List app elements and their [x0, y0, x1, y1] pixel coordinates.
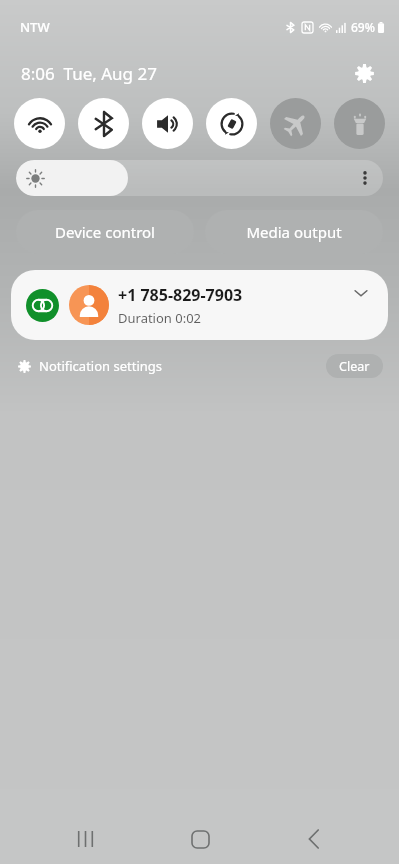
button[interactable]: Clear: [326, 354, 383, 378]
button[interactable]: Airplane mode: [270, 98, 321, 149]
staticText: NTW: [20, 18, 50, 36]
button[interactable]: Auto rotate: [206, 98, 257, 149]
button[interactable]: Notification settings: [15, 354, 166, 378]
staticText: Duration 0:02: [118, 309, 202, 327]
button[interactable]: Device control: [16, 210, 194, 254]
staticText: Notification settings: [39, 357, 163, 375]
button[interactable]: Home: [171, 814, 229, 864]
button[interactable]: More brightness options: [351, 164, 379, 192]
staticText: 8:06 Tue, Aug 27: [21, 62, 157, 85]
button[interactable]: Flashlight: [334, 98, 385, 149]
button[interactable]: Settings: [347, 56, 381, 90]
staticText: Device control: [55, 222, 155, 242]
button[interactable]: Bluetooth: [78, 98, 129, 149]
button[interactable]: Recents: [56, 814, 114, 864]
staticText: +1 785-829-7903: [118, 284, 243, 306]
button[interactable]: [16, 160, 383, 196]
button[interactable]: +1 785-829-7903: [11, 270, 388, 340]
staticText: Clear: [339, 358, 370, 375]
button[interactable]: Sound: [142, 98, 193, 149]
button[interactable]: Back: [285, 814, 343, 864]
button[interactable]: Wi-Fi: [14, 98, 65, 149]
button[interactable]: Expand notification: [346, 278, 376, 308]
staticText: 69%: [351, 19, 375, 35]
staticText: Media output: [246, 222, 342, 242]
button[interactable]: Media output: [205, 210, 383, 254]
